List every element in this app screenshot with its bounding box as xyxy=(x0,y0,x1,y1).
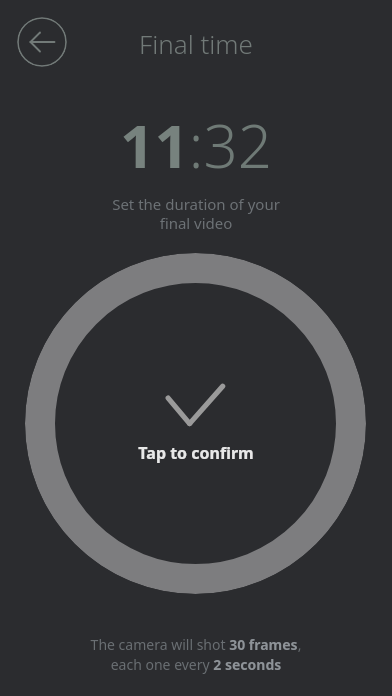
staticText: Set the duration of your final video xyxy=(0,194,392,233)
staticText: The camera will shot 30 frames, each one… xyxy=(24,635,368,674)
staticText: Tap to confirm xyxy=(138,442,254,464)
button[interactable]: Tap to confirm xyxy=(25,253,366,594)
staticText: 11:32 xyxy=(120,104,272,186)
button[interactable]: Back xyxy=(17,17,67,67)
staticText: Final time xyxy=(0,26,392,61)
